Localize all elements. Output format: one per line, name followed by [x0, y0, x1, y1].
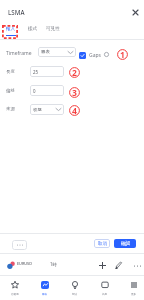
staticText: 輸入 — [6, 26, 16, 32]
staticText: 圖表 — [42, 292, 48, 295]
staticText: 25 — [33, 69, 39, 75]
button[interactable]: 可見性 — [46, 26, 60, 32]
staticText: 可見性 — [46, 26, 60, 32]
button[interactable]: 自選股 — [1, 276, 29, 300]
staticText: 偏移 — [6, 88, 15, 94]
staticText: 想法 — [72, 292, 78, 295]
button[interactable]: Draw — [113, 260, 124, 271]
staticText: 取消 — [98, 241, 107, 247]
button[interactable]: Gaps — [79, 50, 101, 61]
staticText: 圖表 — [41, 49, 50, 55]
staticText: 更多 — [131, 292, 137, 295]
staticText: 1 — [120, 49, 125, 60]
button[interactable]: 1時 — [50, 261, 57, 267]
staticText: 來源 — [6, 106, 15, 112]
button[interactable]: Close — [129, 6, 142, 19]
button[interactable]: 輸入 — [6, 26, 16, 32]
button[interactable]: 樣式 — [28, 26, 38, 32]
staticText: 長度 — [6, 69, 15, 75]
staticText: 樣式 — [28, 26, 38, 32]
button[interactable]: 圖表 — [38, 47, 76, 57]
button[interactable]: 取消 — [94, 239, 110, 248]
staticText: 收盤 — [33, 107, 42, 113]
staticText: 確認 — [121, 241, 130, 247]
staticText: 1時 — [50, 261, 57, 267]
staticText: Timeframe — [6, 50, 32, 57]
button[interactable]: Info — [104, 52, 109, 57]
button[interactable]: Add — [97, 260, 108, 271]
button[interactable]: 25 — [30, 66, 64, 77]
staticText: 0 — [33, 88, 36, 94]
button[interactable]: 想法 — [61, 276, 89, 300]
button[interactable]: EURUSD — [17, 261, 32, 266]
staticText: 訊息 — [102, 292, 108, 295]
button[interactable]: More — [132, 260, 143, 271]
button[interactable]: 更多 — [120, 276, 144, 300]
button[interactable]: 圖表 — [31, 276, 59, 300]
staticText: 自選股 — [11, 292, 19, 295]
button[interactable]: 確認 — [114, 239, 136, 248]
staticText: LSMA — [8, 8, 25, 16]
button[interactable]: 訊息 — [91, 276, 119, 300]
staticText: 3 — [72, 87, 77, 98]
button[interactable]: 收盤 — [30, 104, 64, 115]
staticText: 4 — [72, 105, 77, 116]
staticText: 2 — [72, 67, 77, 78]
staticText: Gaps — [89, 52, 101, 59]
button[interactable]: More options — [12, 240, 27, 250]
staticText: EURUSD — [17, 261, 32, 266]
button[interactable]: 0 — [30, 85, 64, 96]
